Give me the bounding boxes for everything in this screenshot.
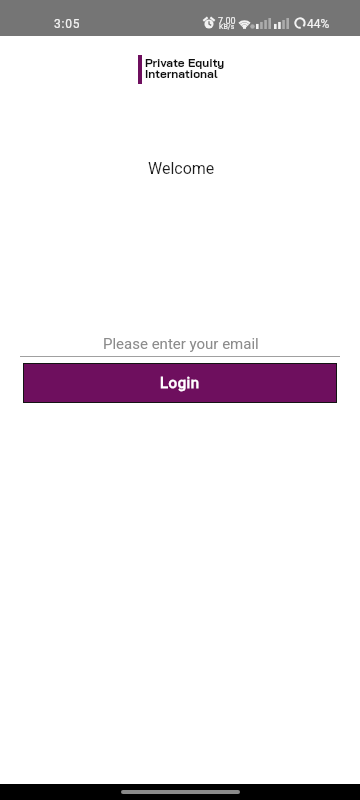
staticText: 44% [307,17,330,31]
staticText: International [145,66,218,81]
staticText: 7.00 [218,16,236,27]
staticText: Private Equity [145,55,225,70]
staticText: 3:05 [54,17,81,31]
staticText: Login [160,374,200,392]
button[interactable]: Please enter your email [20,334,340,357]
button[interactable]: Login [24,364,336,402]
staticText: Please enter your email [103,335,259,353]
staticText: Welcome [148,159,215,178]
staticText: KB/s [219,23,235,31]
